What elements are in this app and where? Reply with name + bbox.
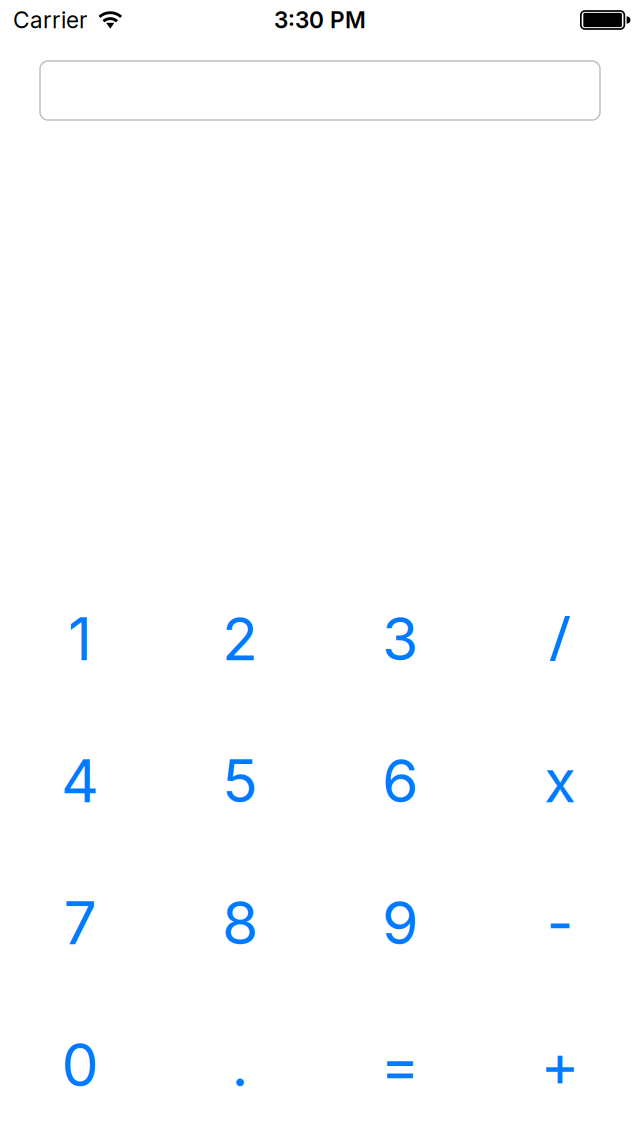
staticText: 8 — [222, 887, 258, 958]
button[interactable]: 0 — [0, 994, 160, 1136]
staticText: 6 — [382, 745, 418, 816]
staticText: 2 — [222, 603, 258, 674]
staticText: 7 — [63, 887, 96, 958]
staticText: . — [231, 1029, 248, 1100]
staticText: 1 — [68, 603, 92, 674]
button[interactable]: 2 — [160, 568, 320, 710]
button[interactable]: 5 — [160, 710, 320, 852]
staticText: - — [546, 887, 573, 958]
staticText: Carrier — [13, 6, 87, 34]
staticText: 3 — [382, 603, 418, 674]
button[interactable]: Divide — [480, 568, 640, 710]
button[interactable]: Equals — [320, 994, 480, 1136]
button[interactable]: 6 — [320, 710, 480, 852]
button[interactable]: Multiply — [480, 710, 640, 852]
button[interactable]: Calculation display — [40, 61, 600, 120]
staticText: 0 — [61, 1029, 98, 1100]
staticText: 3:30 PM — [274, 6, 366, 34]
button[interactable]: 7 — [0, 852, 160, 994]
staticText: = — [380, 1029, 419, 1100]
button[interactable]: 3 — [320, 568, 480, 710]
staticText: 5 — [222, 745, 258, 816]
button[interactable]: Decimal point — [160, 994, 320, 1136]
button[interactable]: Subtract — [480, 852, 640, 994]
button[interactable]: 8 — [160, 852, 320, 994]
staticText: 9 — [382, 887, 418, 958]
staticText: 4 — [61, 745, 99, 816]
staticText: + — [540, 1029, 579, 1100]
staticText: x — [544, 745, 576, 816]
button[interactable]: 4 — [0, 710, 160, 852]
button[interactable]: 1 — [0, 568, 160, 710]
button[interactable]: Add — [480, 994, 640, 1136]
button[interactable]: 9 — [320, 852, 480, 994]
